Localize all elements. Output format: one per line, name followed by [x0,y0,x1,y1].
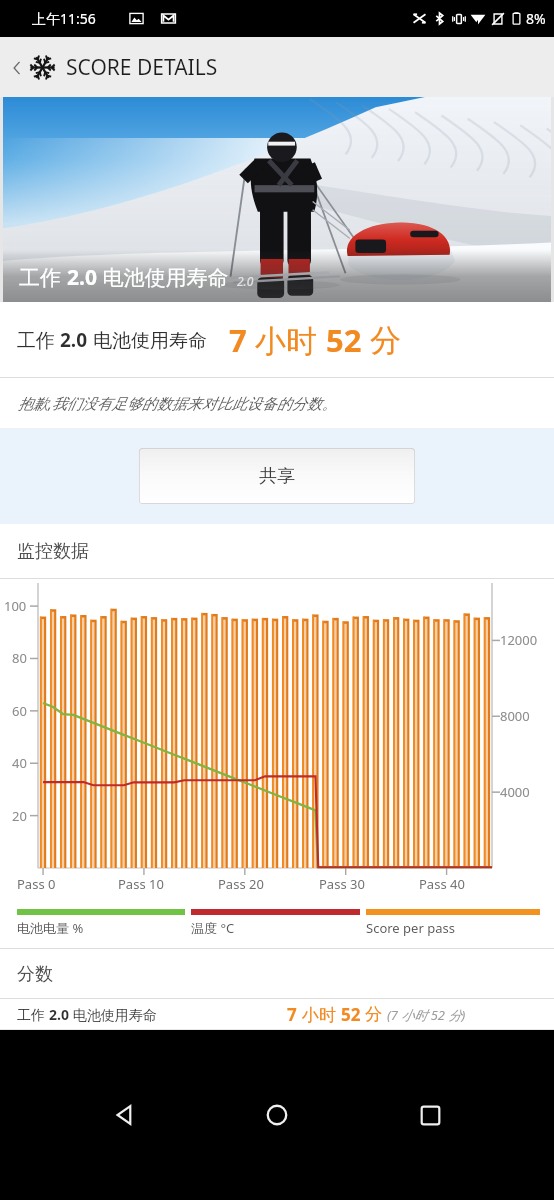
staticText: 监控数据 [17,540,89,563]
button[interactable]: 共享 [139,448,415,504]
staticText: 小时 [255,319,326,361]
staticText: 60 [12,702,27,720]
other: Back [8,59,26,77]
staticText: Pass 40 [419,875,465,893]
staticText: 抱歉,我们没有足够的数据来对比此设备的分数。 [18,393,337,413]
staticText: (7 小时 52 分) [387,1006,466,1024]
staticText: Pass 0 [17,875,56,893]
staticText: 电池使用寿命 [97,263,229,292]
staticText: 电池电量 % [17,919,84,937]
staticText: 52 [341,1003,365,1026]
button[interactable]: Back [6,53,220,82]
staticText: 8% [526,9,546,28]
staticText: 7 [287,1003,302,1026]
staticText: 小时 [302,1003,341,1026]
staticText: 7 [229,319,255,361]
staticText: Score per pass [366,919,455,937]
staticText: 80 [12,649,27,667]
staticText: 共享 [259,465,295,488]
staticText: 工作 [17,1005,49,1024]
staticText: Pass 30 [319,875,365,893]
staticText: SCORE DETAILS [66,53,218,82]
staticText: 20 [12,807,27,825]
staticText: Pass 10 [118,875,164,893]
staticText: 2.0 [60,327,88,353]
staticText: 2.0 [49,1005,69,1024]
staticText: 40 [12,754,27,772]
staticText: 分 [370,321,401,360]
staticText: 100 [4,597,27,615]
staticText: 工作 [17,327,60,353]
staticText: 2.0 [67,263,97,292]
staticText: 52 [326,319,370,361]
staticText: 温度 °C [191,919,235,937]
staticText: Pass 20 [218,875,264,893]
staticText: 4000 [500,783,530,801]
staticText: 分 [365,1004,382,1025]
staticText: 分数 [17,963,53,986]
button[interactable]: 工作 [3,97,551,302]
staticText: 上午11:56 [32,9,96,28]
staticText: 电池使用寿命 [88,327,207,353]
staticText: 12000 [500,631,538,649]
staticText: 8000 [500,707,530,725]
staticText: 工作 [19,263,67,292]
staticText: 2.0 [237,273,254,289]
button[interactable]: Recent apps [402,1087,458,1143]
staticText: 电池使用寿命 [69,1005,157,1024]
button[interactable]: Back [97,1087,153,1143]
button[interactable]: Home [249,1087,305,1143]
